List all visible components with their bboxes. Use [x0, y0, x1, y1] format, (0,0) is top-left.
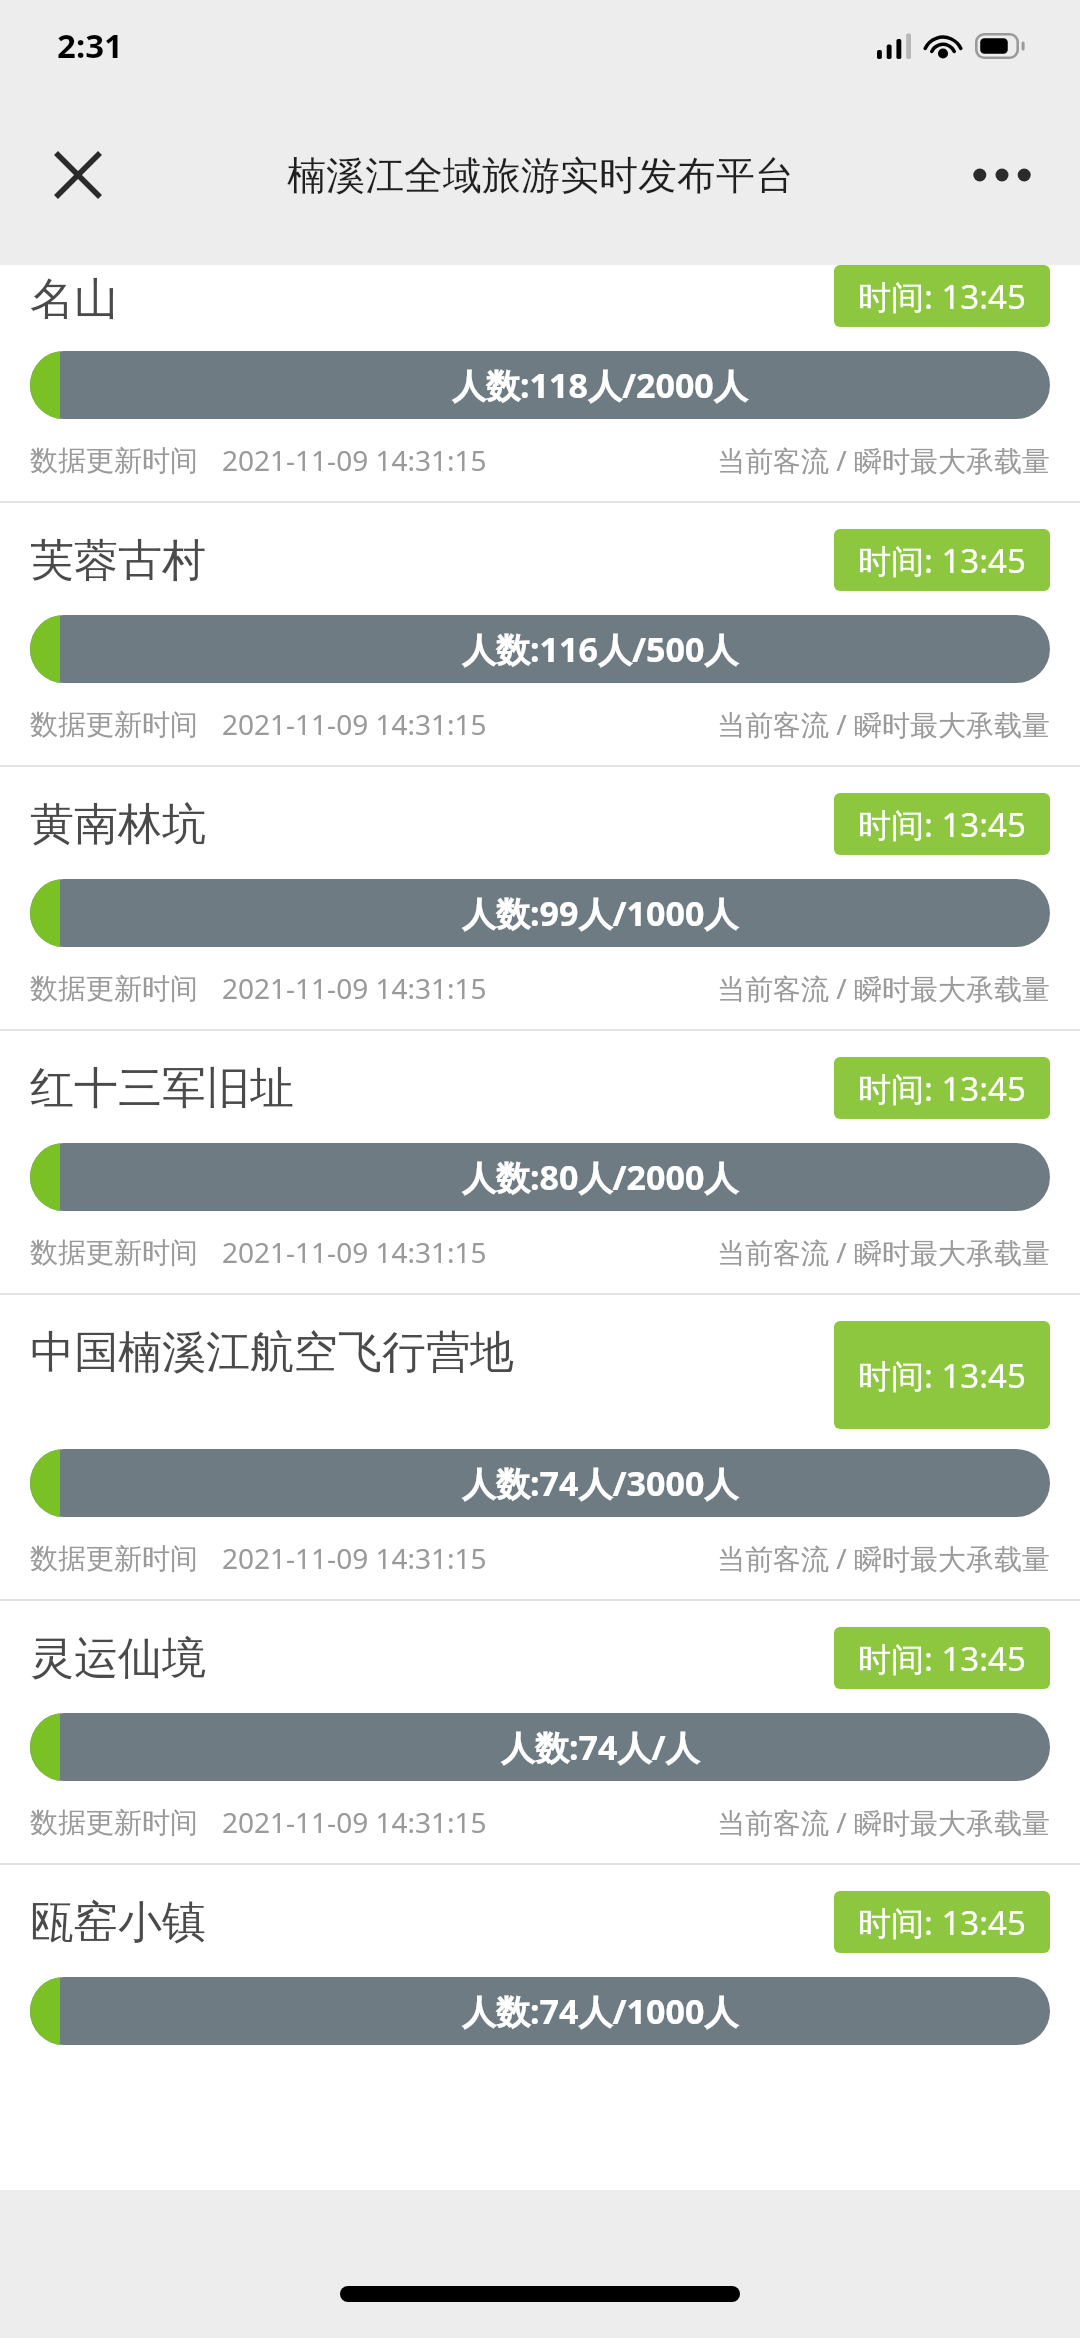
button[interactable]: 时间: 13:45: [834, 1057, 1050, 1119]
staticText: 2021-11-09 14:31:15: [222, 1803, 487, 1841]
button[interactable]: 芙蓉古村: [0, 503, 1080, 765]
staticText: 人数:99人/1000人: [462, 890, 739, 936]
staticText: 当前客流 / 瞬时最大承载量: [717, 441, 1050, 479]
staticText: 时间: 13:45: [858, 1066, 1026, 1111]
button[interactable]: 时间: 13:45: [834, 793, 1050, 855]
staticText: 黄南林坑: [30, 797, 810, 852]
staticText: 人数:116人/500人: [462, 626, 739, 672]
button[interactable]: 中国楠溪江航空飞行营地: [0, 1295, 1080, 1599]
staticText: 数据更新时间: [30, 971, 198, 1006]
button[interactable]: 名山: [0, 265, 1080, 501]
staticText: 数据更新时间: [30, 707, 198, 742]
staticText: 芙蓉古村: [30, 533, 810, 588]
staticText: 当前客流 / 瞬时最大承载量: [717, 705, 1050, 743]
staticText: 时间: 13:45: [858, 1353, 1026, 1398]
staticText: 数据更新时间: [30, 1235, 198, 1270]
button[interactable]: 时间: 13:45: [834, 1321, 1050, 1429]
staticText: 楠溪江全域旅游实时发布平台: [287, 151, 794, 200]
staticText: 瓯窑小镇: [30, 1895, 834, 1950]
staticText: 数据更新时间: [30, 1541, 198, 1576]
staticText: 时间: 13:45: [858, 274, 1026, 319]
staticText: 时间: 13:45: [858, 1636, 1026, 1681]
button[interactable]: 时间: 13:45: [834, 1627, 1050, 1689]
staticText: 人数:74人/人: [501, 1724, 700, 1770]
staticText: 灵运仙境: [30, 1631, 810, 1686]
staticText: 时间: 13:45: [858, 1900, 1026, 1945]
staticText: 当前客流 / 瞬时最大承载量: [717, 1233, 1050, 1271]
staticText: 中国楠溪江航空飞行营地: [30, 1325, 810, 1380]
button[interactable]: 红十三军旧址: [0, 1031, 1080, 1293]
button[interactable]: 黄南林坑: [0, 767, 1080, 1029]
staticText: 2:31: [57, 23, 123, 68]
button[interactable]: 灵运仙境: [0, 1601, 1080, 1863]
staticText: 人数:74人/3000人: [462, 1460, 739, 1506]
staticText: 名山: [30, 272, 118, 327]
staticText: 人数:118人/2000人: [452, 362, 748, 408]
staticText: 时间: 13:45: [858, 802, 1026, 847]
button[interactable]: Close: [40, 137, 116, 213]
staticText: 2021-11-09 14:31:15: [222, 969, 487, 1007]
button[interactable]: More options: [964, 137, 1040, 213]
button[interactable]: 瓯窑小镇: [0, 1865, 1080, 2045]
staticText: 当前客流 / 瞬时最大承载量: [717, 1803, 1050, 1841]
staticText: 人数:80人/2000人: [462, 1154, 739, 1200]
staticText: 红十三军旧址: [30, 1061, 810, 1116]
staticText: 数据更新时间: [30, 1805, 198, 1840]
button[interactable]: 时间: 13:45: [834, 265, 1050, 327]
staticText: 2021-11-09 14:31:15: [222, 1233, 487, 1271]
staticText: 时间: 13:45: [858, 538, 1026, 583]
staticText: 2021-11-09 14:31:15: [222, 705, 487, 743]
staticText: 数据更新时间: [30, 443, 198, 478]
staticText: 2021-11-09 14:31:15: [222, 441, 487, 479]
staticText: 当前客流 / 瞬时最大承载量: [717, 1539, 1050, 1577]
staticText: 人数:74人/1000人: [462, 1988, 739, 2034]
button[interactable]: 时间: 13:45: [834, 1891, 1050, 1953]
button[interactable]: 时间: 13:45: [834, 529, 1050, 591]
staticText: 2021-11-09 14:31:15: [222, 1539, 487, 1577]
staticText: 当前客流 / 瞬时最大承载量: [717, 969, 1050, 1007]
